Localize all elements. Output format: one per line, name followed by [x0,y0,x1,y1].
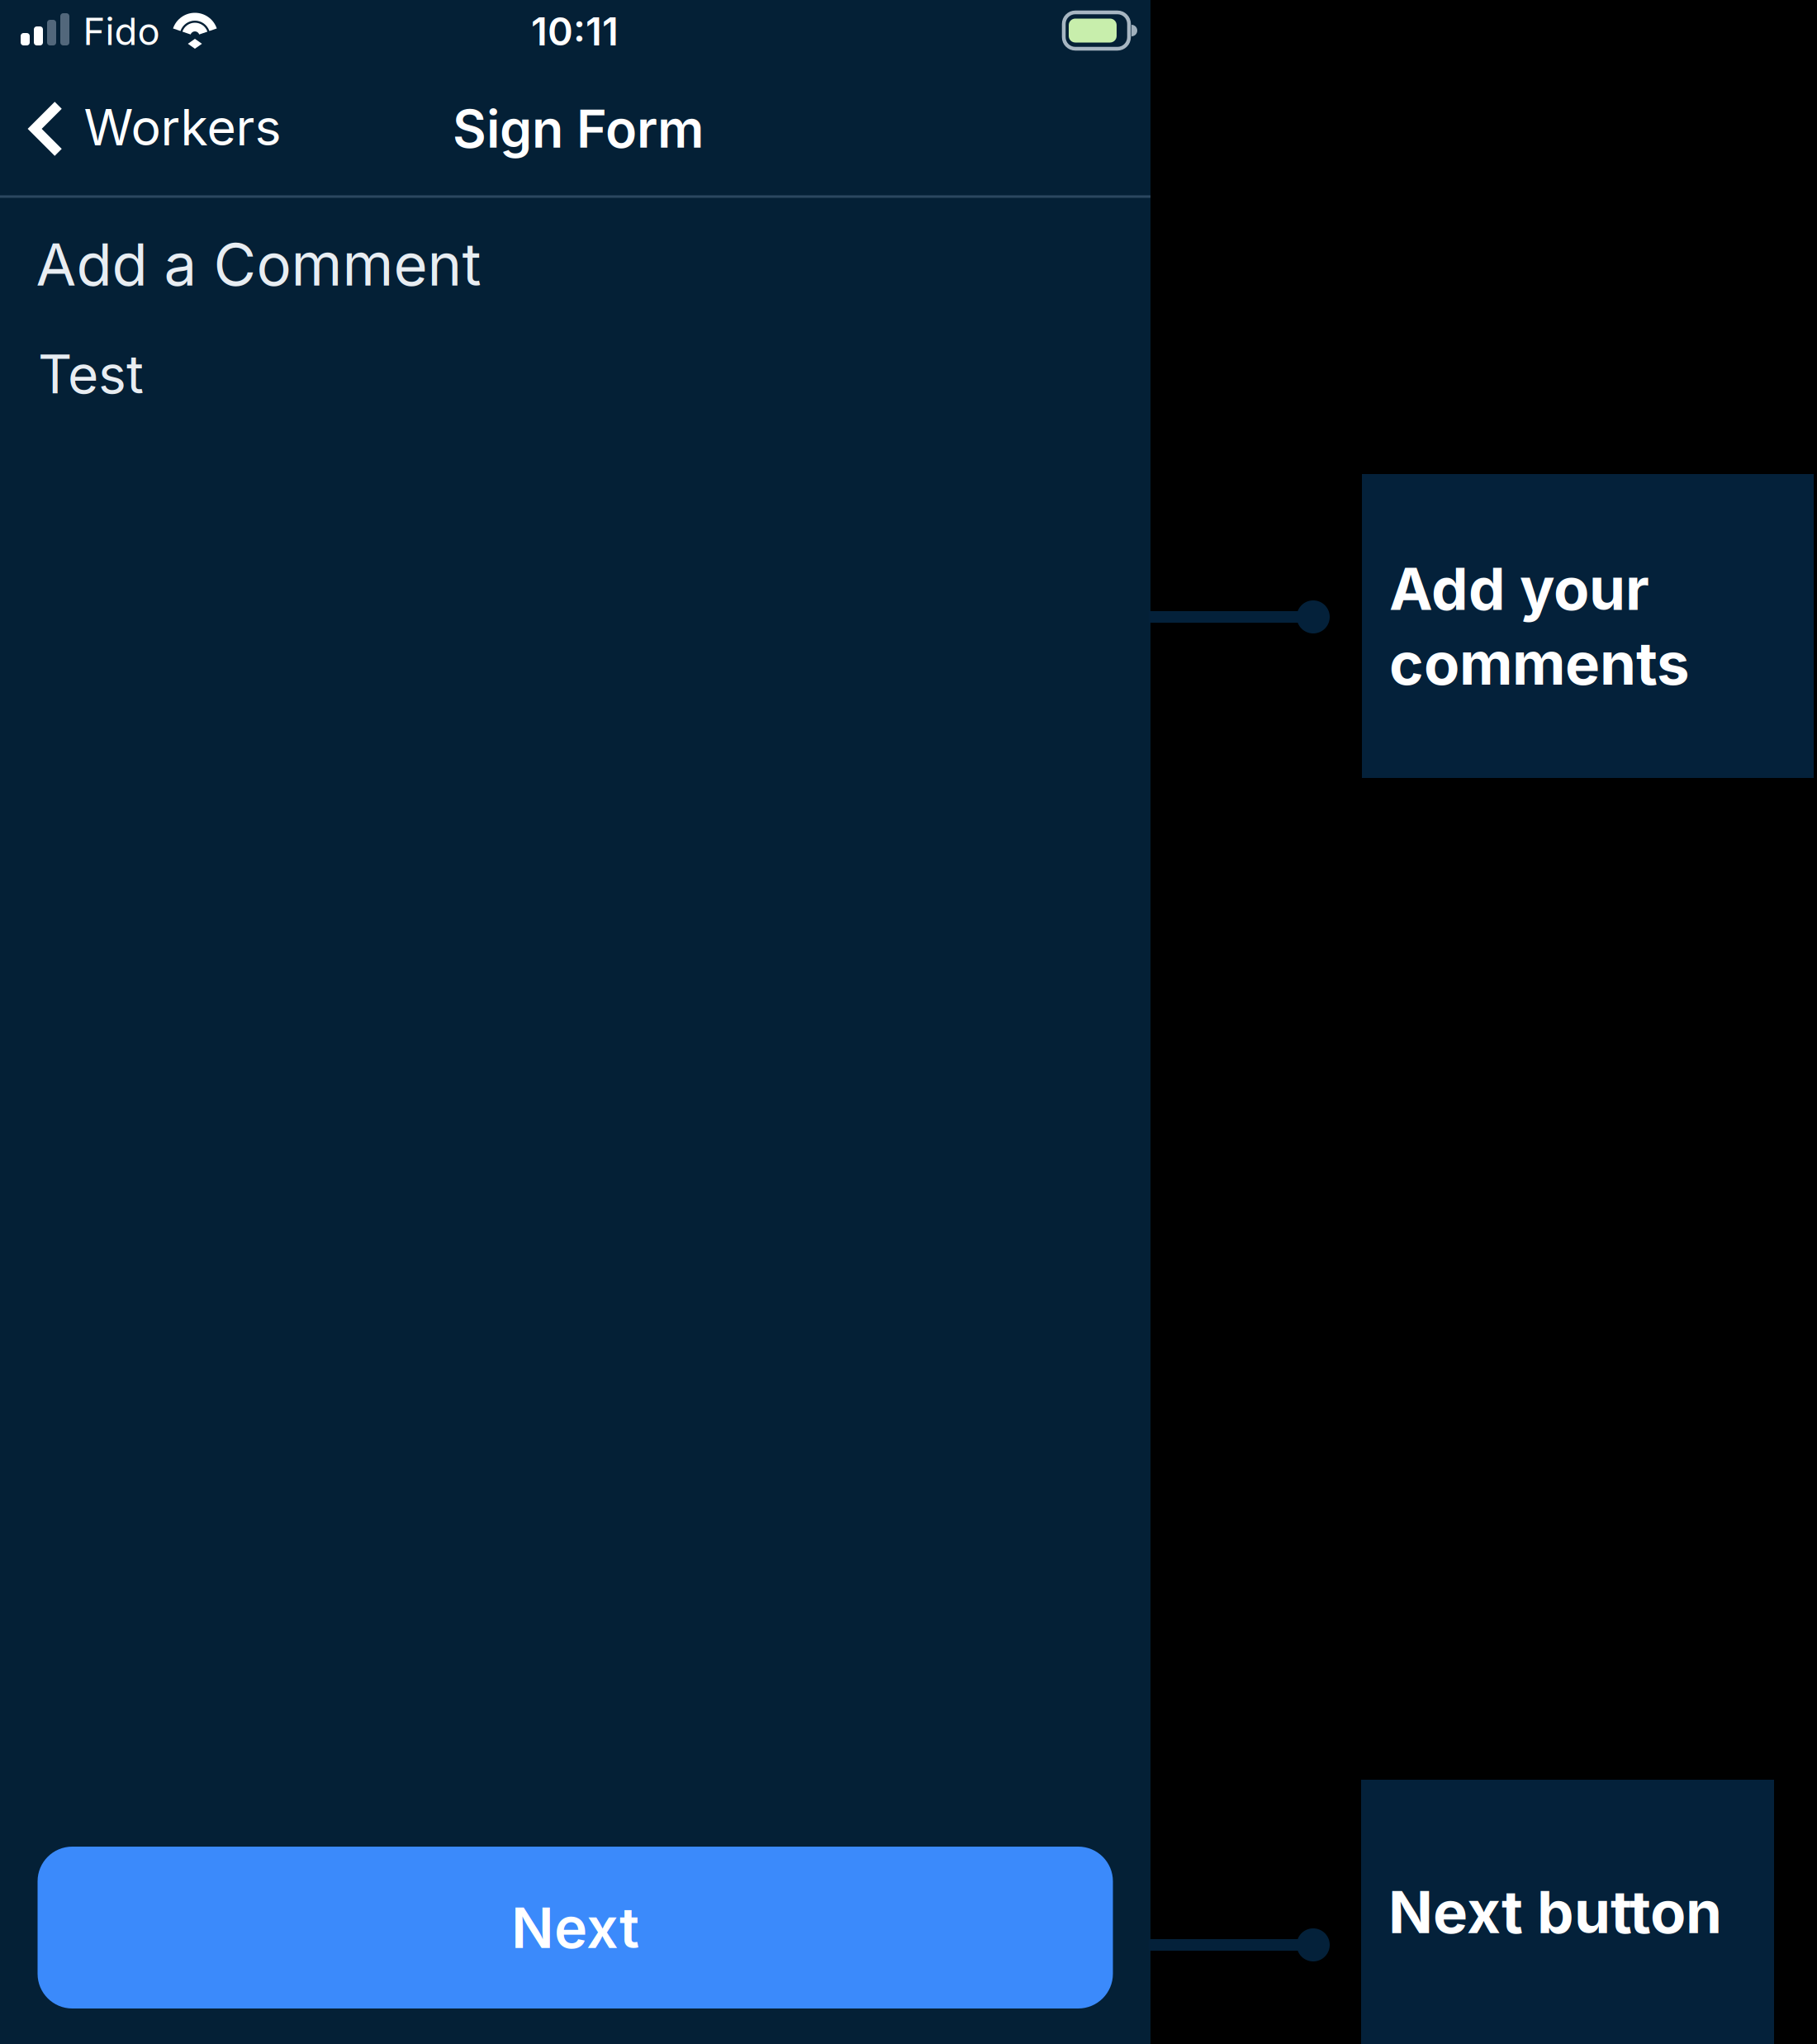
staticText: Fido [83,9,160,54]
staticText: Sign Form [453,98,704,160]
staticText: Next [511,1894,639,1962]
button[interactable]: Workers [0,81,273,177]
staticText: Add a Comment [36,229,481,300]
staticText: 10:11 [531,8,619,55]
staticText: Next button [1388,1877,1722,1947]
staticText: Test [38,342,144,406]
staticText: Add your comments [1389,553,1690,699]
button[interactable]: Next [38,1847,1113,2008]
staticText: Workers [84,97,281,157]
